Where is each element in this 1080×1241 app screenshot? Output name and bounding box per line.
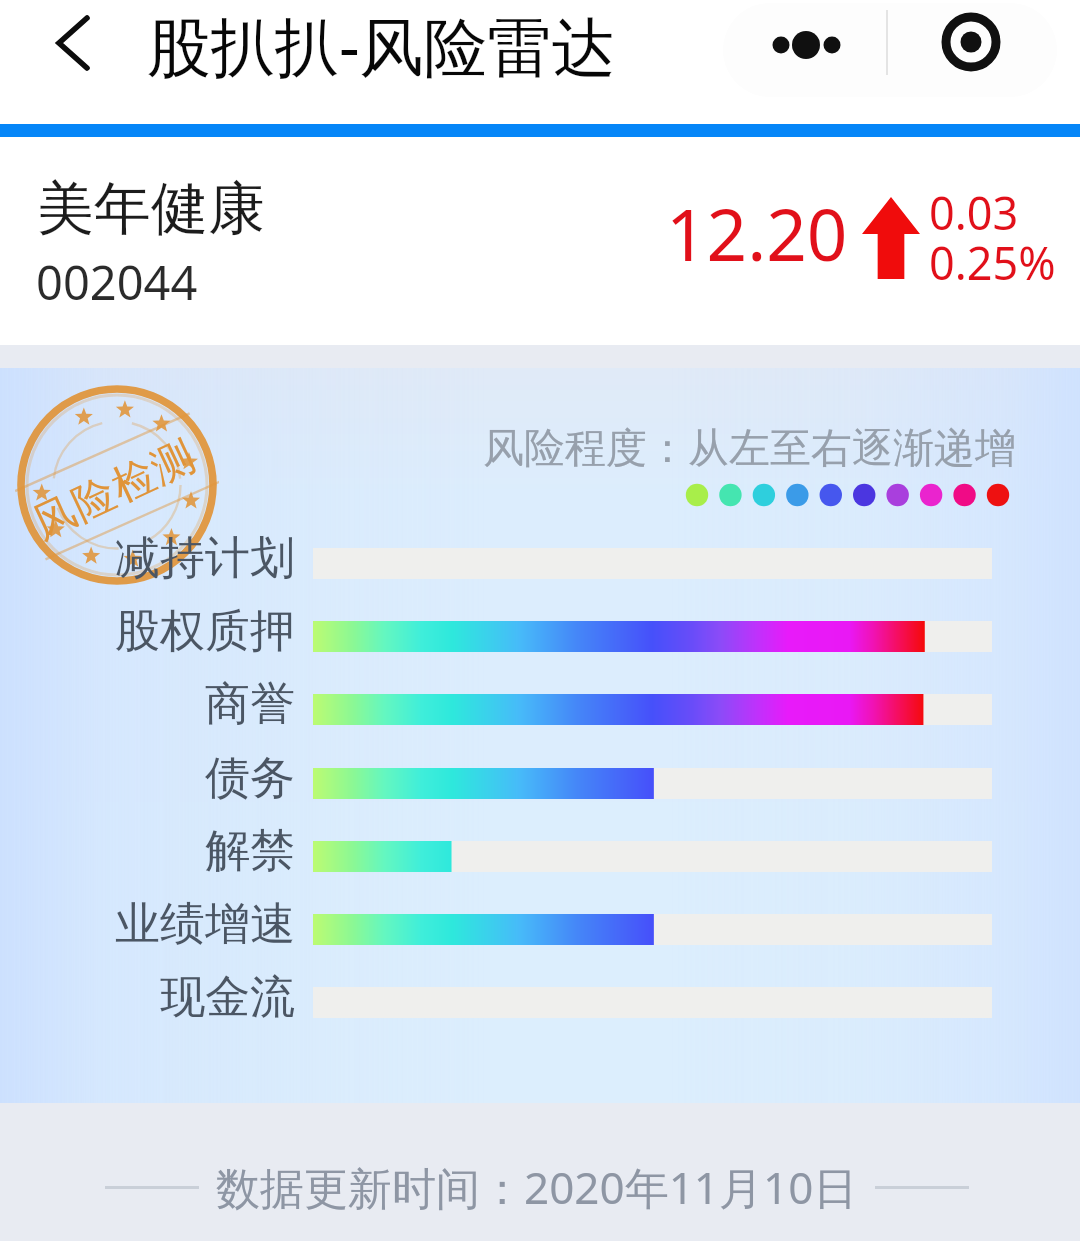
staticText: 减持计划 [115, 530, 295, 587]
staticText: 0.03 [929, 182, 1019, 243]
button[interactable]: Back [40, 10, 106, 76]
button[interactable] [0, 820, 1080, 893]
staticText: 股扒扒-风险雷达 [147, 2, 616, 89]
button[interactable] [0, 747, 1080, 820]
button[interactable] [0, 527, 1080, 600]
staticText: 风险程度：从左至右逐渐递增 [483, 423, 1016, 475]
staticText: 商誉 [205, 676, 295, 733]
button[interactable] [0, 673, 1080, 746]
staticText: 数据更新时间：2020年11月10日 [216, 1157, 858, 1217]
staticText: 现金流 [160, 969, 295, 1026]
button[interactable]: Close mini program [889, 3, 1057, 97]
button[interactable] [0, 893, 1080, 966]
staticText: 债务 [205, 750, 295, 807]
staticText: 风险检测 [24, 430, 204, 551]
staticText: 股权质押 [115, 603, 295, 660]
staticText: 0.25% [929, 232, 1056, 293]
button[interactable] [0, 966, 1080, 1039]
staticText: 002044 [36, 250, 198, 314]
staticText: 美年健康 [37, 173, 265, 245]
button[interactable] [0, 600, 1080, 673]
staticText: 12.20 [666, 185, 848, 282]
staticText: 解禁 [205, 823, 295, 880]
button[interactable]: More options [723, 3, 887, 97]
staticText: 业绩增速 [115, 896, 295, 953]
